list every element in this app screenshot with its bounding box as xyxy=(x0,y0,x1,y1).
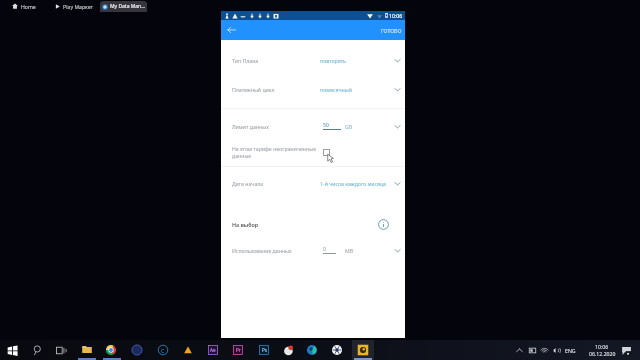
button[interactable]: Information xyxy=(378,219,389,230)
staticText: GB xyxy=(345,123,353,130)
button[interactable]: Task view xyxy=(56,345,67,356)
button[interactable]: YELLOW xyxy=(357,344,369,356)
button[interactable]: Использование данных xyxy=(221,240,405,260)
button[interactable]: FOLDER xyxy=(81,344,93,356)
button[interactable]: 10:06 xyxy=(588,343,616,357)
button[interactable]: Home xyxy=(12,0,36,12)
staticText: 0 xyxy=(323,245,326,252)
button[interactable]: AE xyxy=(207,344,219,356)
button[interactable]: Тип Плана xyxy=(221,50,405,70)
button[interactable]: Notifications xyxy=(621,345,632,356)
staticText: MB xyxy=(345,247,354,254)
button[interactable]: RED xyxy=(283,344,295,356)
staticText: Использование данных xyxy=(232,247,292,254)
staticText: Лимит данных xyxy=(232,123,269,130)
button[interactable]: Платежный цикл xyxy=(221,79,405,99)
button[interactable]: Start xyxy=(7,345,18,356)
button[interactable]: Back xyxy=(226,24,237,35)
button[interactable]: Search xyxy=(32,345,43,356)
button[interactable]: Лимит данных xyxy=(221,116,405,136)
button[interactable]: CHROME xyxy=(105,344,117,356)
staticText: 10:06 xyxy=(389,12,403,19)
staticText: На выбор xyxy=(232,221,259,228)
button[interactable]: Show hidden icons xyxy=(515,346,524,355)
button[interactable]: На этом тарифе неограниченные данные xyxy=(221,140,405,168)
button[interactable]: My Data Man... xyxy=(100,1,147,12)
staticText: Home xyxy=(21,3,36,10)
button[interactable]: ENG xyxy=(565,340,576,360)
staticText: 50 xyxy=(323,121,329,128)
button[interactable]: PR xyxy=(232,344,244,356)
staticText: Ae xyxy=(210,347,216,353)
staticText: 06.12.2020 xyxy=(589,350,616,357)
staticText: Ps xyxy=(262,347,267,353)
staticText: Play Маркет xyxy=(63,3,93,10)
staticText: Тип Плана xyxy=(232,57,259,64)
button[interactable]: Unlimited data checkbox xyxy=(323,149,330,156)
staticText: 1-й числа каждого месяца xyxy=(320,180,386,187)
staticText: На этом тарифе неограниченные данные xyxy=(232,145,327,160)
button[interactable]: PS xyxy=(258,344,270,356)
staticText: ENG xyxy=(565,347,576,354)
staticText: ГОТОВО xyxy=(381,27,402,34)
button[interactable]: Дата начала xyxy=(221,173,405,193)
staticText: My Data Man... xyxy=(110,3,146,10)
button[interactable]: EDGE xyxy=(306,344,318,356)
button[interactable]: Battery xyxy=(528,346,537,355)
staticText: × xyxy=(101,3,104,10)
button[interactable]: WHEEL xyxy=(331,344,343,356)
staticText: 10:06 xyxy=(595,343,609,350)
staticText: помесячный xyxy=(320,86,352,93)
button[interactable]: Network xyxy=(540,346,549,355)
staticText: Платежный цикл xyxy=(232,86,275,93)
button[interactable]: BLUECIRCLE xyxy=(131,344,143,356)
staticText: Pr xyxy=(236,347,241,353)
staticText: повторять xyxy=(320,57,346,64)
staticText: Дата начала xyxy=(232,180,264,187)
button[interactable]: На выбор xyxy=(221,214,405,234)
button[interactable]: Volume xyxy=(552,346,561,355)
button[interactable]: Play Маркет xyxy=(55,0,104,12)
button[interactable]: CCIRCLE xyxy=(157,344,169,356)
button[interactable]: TRIANGLE xyxy=(182,344,194,356)
staticText: C xyxy=(161,347,165,354)
